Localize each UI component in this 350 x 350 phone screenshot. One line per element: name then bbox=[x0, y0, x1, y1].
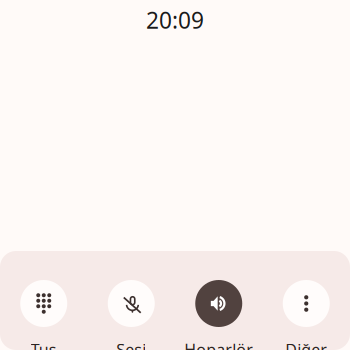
button[interactable]: Sesi bbox=[87, 280, 175, 350]
button[interactable]: Diğer bbox=[262, 280, 350, 350]
staticText: Hoparlör bbox=[184, 339, 253, 350]
staticText: Tuş bbox=[31, 339, 57, 350]
button[interactable]: Hoparlör bbox=[175, 280, 262, 350]
staticText: 20:09 bbox=[146, 5, 204, 35]
button[interactable]: Tuş bbox=[0, 280, 87, 350]
staticText: Diğer bbox=[285, 339, 327, 350]
staticText: Sesi bbox=[116, 339, 146, 350]
